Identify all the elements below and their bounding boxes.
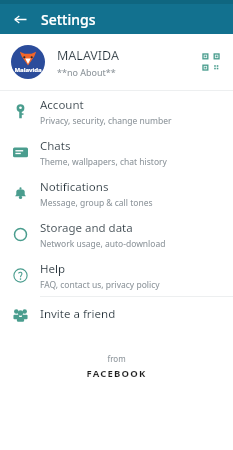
staticText: **no About**	[57, 66, 116, 78]
staticText: Chats	[40, 138, 71, 154]
button[interactable]: Back	[7, 6, 33, 32]
button[interactable]: Help	[0, 255, 233, 296]
button[interactable]: Chats	[0, 132, 233, 173]
staticText: Storage and data	[40, 220, 133, 236]
staticText: Theme, wallpapers, chat history	[40, 156, 167, 168]
button[interactable]: Malavida	[0, 34, 233, 90]
staticText: from	[107, 353, 126, 364]
staticText: FAQ, contact us, privacy policy	[40, 279, 160, 291]
staticText: Malavida	[11, 66, 45, 74]
button[interactable]: Notifications	[0, 173, 233, 214]
staticText: Invite a friend	[40, 306, 116, 322]
staticText: Settings	[41, 10, 96, 29]
button[interactable]: Invite a friend	[0, 297, 233, 331]
staticText: Message, group & call tones	[40, 197, 153, 209]
staticText: MALAVIDA	[57, 47, 119, 64]
staticText: Account	[40, 97, 84, 113]
staticText: Notifications	[40, 179, 109, 195]
staticText: Network usage, auto-download	[40, 238, 166, 250]
staticText: Help	[40, 261, 66, 277]
button[interactable]: Storage and data	[0, 214, 233, 255]
staticText: FACEBOOK	[86, 367, 147, 380]
staticText: Privacy, security, change number	[40, 115, 172, 127]
button[interactable]: QR code	[199, 50, 223, 74]
button[interactable]: Account	[0, 91, 233, 132]
